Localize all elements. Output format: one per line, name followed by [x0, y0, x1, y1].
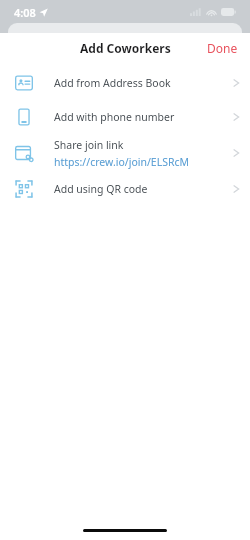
- staticText: Add from Address Book: [54, 76, 171, 90]
- staticText: Share join link: [54, 138, 124, 152]
- staticText: https://crew.io/join/ELSRcM: [54, 155, 190, 169]
- staticText: 4:08: [14, 5, 36, 20]
- staticText: Done: [207, 40, 238, 56]
- other: Share join link: [15, 144, 33, 162]
- other: Phone: [15, 108, 33, 126]
- staticText: Add Coworkers: [80, 40, 171, 56]
- other: Address book: [15, 74, 33, 92]
- button[interactable]: Share join link: [0, 134, 250, 172]
- button[interactable]: Phone: [0, 100, 250, 134]
- staticText: Add with phone number: [54, 110, 175, 124]
- button[interactable]: QR code: [0, 172, 250, 206]
- button[interactable]: Address book: [0, 66, 250, 100]
- other: QR code: [15, 180, 33, 198]
- staticText: Add using QR code: [54, 182, 148, 196]
- button[interactable]: Done: [195, 34, 250, 62]
